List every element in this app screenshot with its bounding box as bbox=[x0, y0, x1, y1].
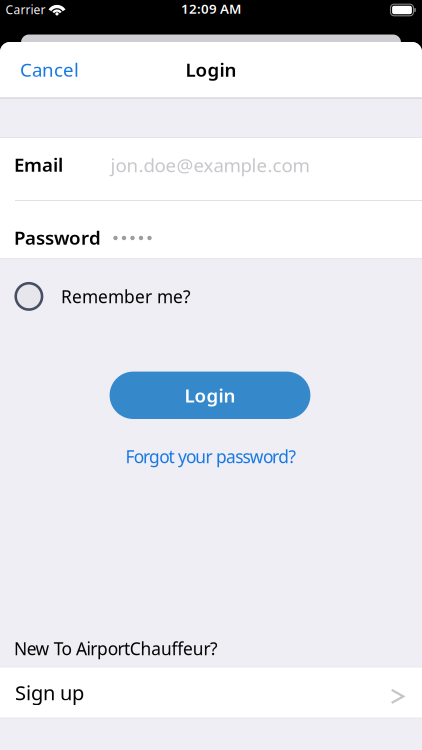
button[interactable]: Cancel bbox=[20, 54, 79, 84]
button[interactable]: Email bbox=[0, 137, 422, 200]
staticText: New To AirportChauffeur? bbox=[14, 637, 218, 660]
button[interactable]: Password bbox=[0, 200, 422, 258]
staticText: Cancel bbox=[20, 57, 79, 82]
staticText: Carrier bbox=[5, 1, 45, 17]
staticText: Login bbox=[185, 57, 236, 82]
staticText: Forgot your password? bbox=[125, 445, 296, 468]
staticText: Email bbox=[14, 152, 63, 177]
staticText: Password bbox=[14, 225, 101, 250]
staticText: Sign up bbox=[15, 679, 84, 706]
staticText: Login bbox=[184, 383, 235, 408]
staticText: 12:09 AM bbox=[181, 0, 241, 17]
button[interactable]: Sign up bbox=[0, 666, 422, 718]
staticText: Remember me? bbox=[61, 285, 191, 308]
staticText: jon.doe@example.com bbox=[110, 153, 309, 177]
button[interactable]: Login bbox=[110, 372, 310, 419]
button[interactable]: Remember me? bbox=[16, 281, 191, 311]
button[interactable]: Forgot your password? bbox=[0, 441, 422, 471]
